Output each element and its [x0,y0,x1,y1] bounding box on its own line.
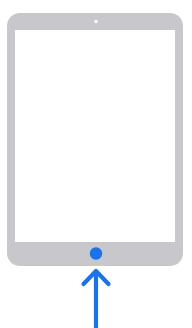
button[interactable]: Press the Home button [0,0,192,328]
